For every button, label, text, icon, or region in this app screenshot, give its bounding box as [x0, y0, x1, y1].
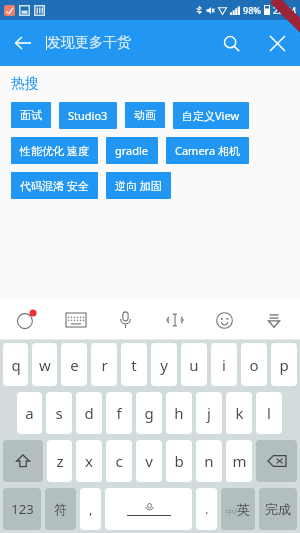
staticText: g [144, 403, 154, 423]
staticText: v [145, 451, 153, 471]
button[interactable]: 代码混淆 安全 [11, 172, 98, 199]
staticText: y [160, 355, 168, 375]
staticText: m [232, 451, 247, 471]
button[interactable]: IME logo [6, 300, 46, 340]
staticText: 热搜 [11, 75, 39, 93]
other: Shift [3, 440, 43, 482]
staticText: w [39, 355, 51, 375]
button[interactable]: r [91, 343, 117, 386]
staticText: 中/ [226, 506, 237, 517]
button[interactable]: 逆向 加固 [106, 172, 171, 199]
button[interactable]: 面试 [11, 102, 51, 128]
staticText: 符 [54, 501, 67, 517]
staticText: e [70, 355, 79, 375]
button[interactable]: s [46, 392, 72, 434]
staticText: c [115, 451, 123, 471]
button[interactable]: Search [208, 20, 254, 66]
button[interactable]: o [241, 343, 267, 386]
staticText: Studio3 [68, 108, 108, 123]
staticText: z [56, 451, 64, 471]
staticText: 动画 [134, 108, 156, 122]
button[interactable]: Backspace [256, 440, 297, 482]
staticText: , [89, 500, 93, 518]
staticText: 面试 [20, 108, 42, 122]
staticText: d [84, 403, 94, 423]
staticText: Camera 相机 [175, 143, 240, 158]
button[interactable]: 符 [45, 488, 76, 530]
staticText: s [55, 403, 63, 423]
staticText: k [235, 403, 244, 423]
button[interactable]: d [76, 392, 102, 434]
button[interactable]: h [166, 392, 192, 434]
button[interactable]: 性能优化 速度 [11, 137, 98, 164]
staticText: 逆向 加固 [115, 178, 162, 193]
button[interactable]: Camera 相机 [166, 137, 249, 164]
button[interactable]: i [211, 343, 237, 386]
button[interactable]: q [3, 343, 28, 386]
button[interactable]: 中/ [221, 488, 255, 530]
button[interactable]: 发现更多干货 [46, 20, 208, 66]
staticText: f [116, 403, 122, 423]
staticText: b [174, 451, 184, 471]
staticText: i [222, 355, 226, 375]
staticText: 性能优化 速度 [20, 143, 89, 158]
staticText: p [279, 355, 289, 375]
button[interactable]: t [121, 343, 147, 386]
staticText: 123 [11, 500, 34, 518]
staticText: 发现更多干货 [47, 34, 131, 52]
staticText: a [25, 403, 34, 423]
staticText: o [249, 355, 259, 375]
button[interactable]: Shift [3, 440, 43, 482]
button[interactable]: k [226, 392, 252, 434]
button[interactable]: 自定义View [173, 102, 249, 129]
button[interactable]: , [80, 488, 101, 530]
staticText: j [207, 403, 211, 423]
button[interactable]: 动画 [125, 102, 165, 128]
button[interactable]: Keyboard [56, 300, 96, 340]
button[interactable]: u [181, 343, 207, 386]
staticText: 自定义View [182, 108, 240, 123]
button[interactable]: e [61, 343, 87, 386]
button[interactable]: z [47, 440, 72, 482]
staticText: t [131, 355, 137, 375]
button[interactable]: x [76, 440, 102, 482]
button[interactable]: n [196, 440, 222, 482]
button[interactable]: Voice input [105, 300, 145, 340]
button[interactable]: y [151, 343, 177, 386]
staticText: r [101, 355, 108, 375]
button[interactable]: g [136, 392, 162, 434]
button[interactable]: Back [0, 20, 46, 66]
staticText: x [85, 451, 93, 471]
button[interactable]: j [196, 392, 222, 434]
button[interactable]: Hide keyboard [254, 300, 294, 340]
button[interactable]: w [32, 343, 57, 386]
staticText: gradle [115, 143, 149, 158]
button[interactable]: c [106, 440, 132, 482]
button[interactable]: . [196, 488, 217, 530]
staticText: q [11, 355, 21, 375]
button[interactable]: v [136, 440, 162, 482]
other: Space [105, 488, 192, 530]
button[interactable]: Space [105, 488, 192, 530]
button[interactable]: p [271, 343, 297, 386]
button[interactable]: Studio3 [59, 102, 117, 129]
button[interactable]: b [166, 440, 192, 482]
button[interactable]: Emoji [204, 300, 244, 340]
button[interactable]: Edit text [155, 300, 195, 340]
staticText: . [205, 500, 209, 518]
button[interactable]: l [256, 392, 282, 434]
other: Backspace [256, 440, 297, 482]
button[interactable]: 123 [3, 488, 41, 530]
staticText: 完成 [265, 501, 291, 517]
staticText: l [267, 403, 271, 423]
button[interactable]: Close [254, 20, 300, 66]
staticText: n [204, 451, 214, 471]
button[interactable]: f [106, 392, 132, 434]
button[interactable]: gradle [106, 137, 158, 164]
staticText: 代码混淆 安全 [20, 178, 89, 193]
staticText: u [189, 355, 199, 375]
staticText: 英 [237, 501, 250, 517]
button[interactable]: 完成 [259, 488, 297, 530]
button[interactable]: m [226, 440, 252, 482]
button[interactable]: a [17, 392, 42, 434]
